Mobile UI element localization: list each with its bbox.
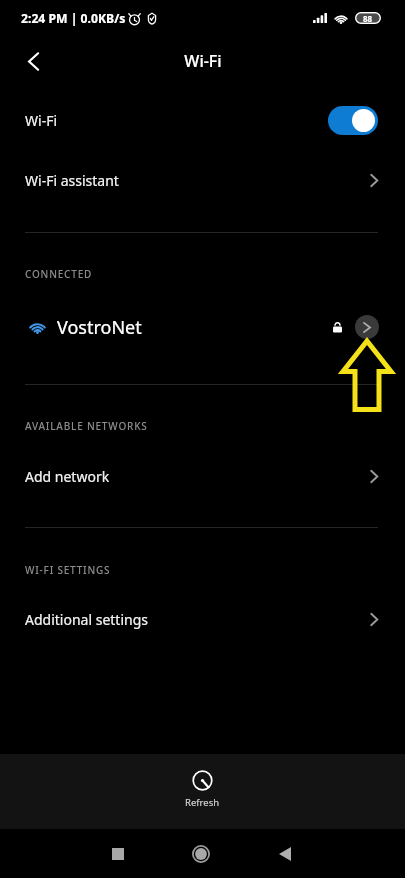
staticText: Refresh [185,796,220,809]
button[interactable]: Recent apps [92,829,144,878]
button[interactable]: Back [15,43,51,79]
button[interactable]: Home [175,829,227,878]
button[interactable]: Additional settings [0,591,405,647]
button[interactable]: Wi-Fi on [328,106,378,135]
staticText: VostroNet [57,315,142,340]
button[interactable]: Add network [0,448,405,504]
staticText: Additional settings [25,610,148,629]
staticText: Wi-Fi [25,111,58,130]
button[interactable]: VostroNet [0,306,405,348]
staticText: Add network [25,467,110,486]
staticText: WI-FI SETTINGS [25,563,111,577]
button[interactable]: Refresh [161,766,244,817]
button[interactable]: Wi-Fi [0,92,405,148]
button[interactable]: Network details [355,315,379,339]
staticText: Wi-Fi assistant [25,171,119,190]
button[interactable]: Wi-Fi assistant [0,152,405,208]
staticText: Wi-Fi [184,50,222,72]
staticText: 88 [363,13,373,24]
staticText: 2:24 PM | 0.0KB/s [21,10,126,27]
staticText: CONNECTED [25,267,93,281]
staticText: AVAILABLE NETWORKS [25,419,148,433]
button[interactable]: Back [259,829,311,878]
